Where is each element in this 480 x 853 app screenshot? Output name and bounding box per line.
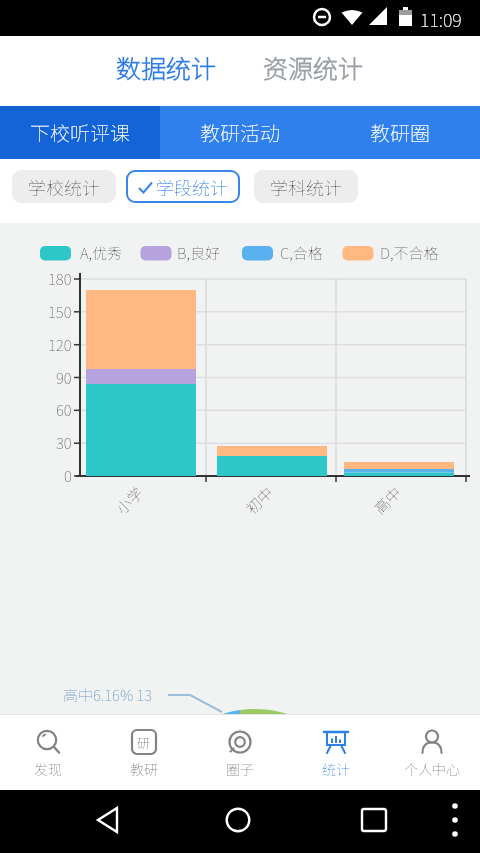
staticText: 高中 xyxy=(369,481,406,519)
button[interactable]: 学校统计 xyxy=(12,170,116,203)
staticText: 圈子 xyxy=(226,759,254,779)
staticText: 11:09 xyxy=(420,6,462,32)
staticText: 数据统计 xyxy=(116,49,217,85)
button[interactable]: 研 xyxy=(96,715,192,790)
button[interactable]: 学科统计 xyxy=(254,170,358,203)
staticText: 教研活动 xyxy=(200,118,280,147)
staticText: 小学 xyxy=(111,481,148,519)
staticText: 高中6.16% 13 xyxy=(63,684,153,706)
staticText: 180 xyxy=(48,268,72,290)
staticText: 90 xyxy=(56,367,72,389)
staticText: 下校听评课 xyxy=(30,118,130,147)
staticText: B,良好 xyxy=(177,242,220,264)
staticText: 120 xyxy=(48,334,72,356)
staticText: 30 xyxy=(56,432,72,454)
staticText: 学段统计 xyxy=(156,174,228,200)
staticText: 学科统计 xyxy=(270,174,342,200)
staticText: A,优秀 xyxy=(80,242,123,264)
staticText: 发现 xyxy=(34,759,62,779)
staticText: D,不合格 xyxy=(380,242,439,264)
button[interactable]: 资源统计 xyxy=(263,49,364,85)
staticText: 0 xyxy=(64,465,72,487)
button[interactable]: 下校听评课 xyxy=(0,106,160,159)
staticText: 学校统计 xyxy=(28,174,100,200)
staticText: 150 xyxy=(48,301,72,323)
button[interactable]: 统计 xyxy=(288,715,384,790)
staticText: C,合格 xyxy=(280,242,323,264)
button[interactable]: 教研活动 xyxy=(160,106,320,159)
button[interactable]: 圈子 xyxy=(192,715,288,790)
staticText: 研 xyxy=(137,733,151,752)
button[interactable]: 个人中心 xyxy=(384,715,480,790)
staticText: 教研 xyxy=(130,759,158,779)
button[interactable]: 发现 xyxy=(0,715,96,790)
staticText: 初中 xyxy=(241,481,278,519)
button[interactable]: 教研圈 xyxy=(320,106,480,159)
staticText: 个人中心 xyxy=(404,759,460,779)
button[interactable]: 数据统计 xyxy=(116,49,217,85)
button[interactable]: 学段统计 xyxy=(126,170,240,203)
staticText: 统计 xyxy=(322,759,350,779)
staticText: 资源统计 xyxy=(263,49,364,85)
staticText: 教研圈 xyxy=(370,118,430,147)
staticText: 60 xyxy=(56,399,72,421)
